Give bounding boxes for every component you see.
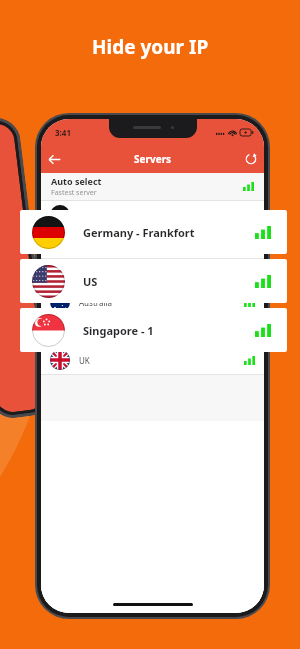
button[interactable]: Refresh xyxy=(238,146,264,172)
button[interactable]: Singapore - 1 xyxy=(41,259,264,287)
staticText: UK xyxy=(79,355,244,366)
button[interactable]: Auto select xyxy=(41,173,264,200)
staticText: Servers xyxy=(134,152,172,166)
staticText: Netherlands xyxy=(79,326,244,337)
staticText: Hide your IP xyxy=(92,34,209,60)
staticText: Singapore - 1 xyxy=(79,268,244,279)
button[interactable]: Germany - Frankfort xyxy=(41,201,264,229)
staticText: 3:41 xyxy=(55,127,71,138)
staticText: Germany - Frankfort xyxy=(83,225,255,240)
button[interactable]: Germany - Frankfort xyxy=(20,210,287,254)
staticText: Fastest server xyxy=(51,188,97,198)
staticText: Australia xyxy=(79,297,244,308)
button[interactable]: Singapore - 1 xyxy=(20,308,287,352)
staticText: US xyxy=(79,239,244,250)
staticText: US xyxy=(83,274,255,289)
button[interactable]: Back xyxy=(41,146,67,172)
button[interactable]: UK xyxy=(41,346,264,374)
button[interactable]: Australia xyxy=(41,288,264,316)
button[interactable]: US xyxy=(41,230,264,258)
button[interactable]: US xyxy=(20,259,287,303)
button[interactable]: Netherlands xyxy=(41,317,264,345)
staticText: Auto select xyxy=(51,175,102,187)
staticText: Singapore - 1 xyxy=(83,323,255,338)
